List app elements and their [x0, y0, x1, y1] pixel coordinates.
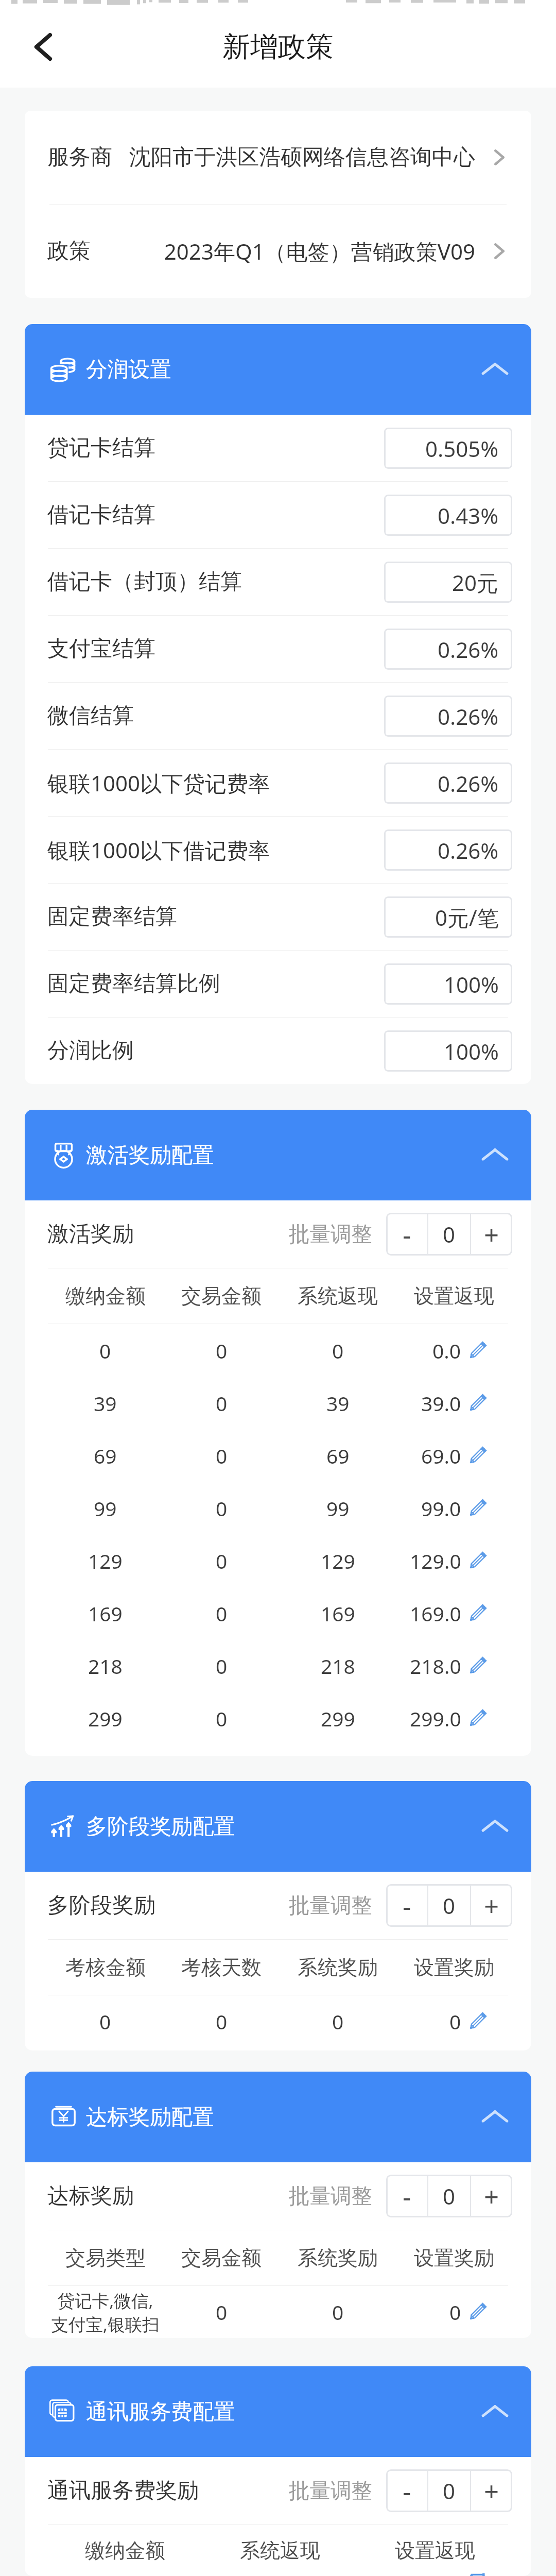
- staticText: 设置奖励: [414, 1955, 494, 1980]
- staticText: 交易金额: [181, 1283, 262, 1309]
- staticText: 交易类型: [65, 2245, 146, 2270]
- staticText: 0: [216, 1495, 228, 1522]
- staticText: 考核金额: [65, 1955, 146, 1980]
- button[interactable]: 银联1000以下贷记费率: [25, 750, 531, 816]
- staticText: 100%: [444, 1037, 499, 1066]
- staticText: -: [403, 1216, 411, 1252]
- staticText: 批量调整: [289, 1221, 372, 1247]
- staticText: 0: [216, 1442, 228, 1469]
- button[interactable]: 增加: [471, 2469, 512, 2512]
- button[interactable]: 编辑: [396, 1389, 512, 1417]
- staticText: 129: [321, 1547, 355, 1574]
- staticText: 激活奖励: [47, 1221, 134, 1248]
- button[interactable]: 编辑: [396, 1337, 512, 1364]
- staticText: 99.0: [421, 1495, 461, 1522]
- staticText: 218: [321, 1652, 355, 1680]
- staticText: 批量调整: [289, 1892, 372, 1919]
- staticText: 169: [321, 1600, 355, 1627]
- button[interactable]: 减少: [386, 2469, 427, 2512]
- staticText: 设置返现: [414, 1283, 494, 1309]
- button[interactable]: 微信结算: [25, 683, 531, 749]
- staticText: 0: [332, 2298, 344, 2326]
- staticText: 固定费率结算比例: [47, 970, 220, 997]
- button[interactable]: 编辑: [396, 1652, 512, 1680]
- staticText: 0: [216, 1547, 228, 1574]
- staticText: 系统返现: [240, 2538, 320, 2563]
- staticText: 0: [99, 1337, 111, 1364]
- staticText: 缴纳金额: [65, 1283, 146, 1309]
- staticText: +: [484, 2178, 499, 2214]
- button[interactable]: 编辑: [396, 1705, 512, 1732]
- button[interactable]: 支付宝结算: [25, 616, 531, 682]
- button[interactable]: 分润设置: [25, 324, 531, 415]
- staticText: 通讯服务费配置: [86, 2398, 235, 2425]
- button[interactable]: 编辑: [396, 1547, 512, 1574]
- button[interactable]: 编辑: [396, 1600, 512, 1627]
- button[interactable]: 编辑: [396, 2008, 512, 2035]
- staticText: 299: [321, 1705, 355, 1732]
- staticText: 0: [216, 1652, 228, 1680]
- staticText: 69: [326, 1442, 350, 1469]
- button[interactable]: 多阶段奖励配置: [25, 1781, 531, 1872]
- staticText: 99: [94, 1495, 117, 1522]
- button[interactable]: 返回: [6, 10, 80, 84]
- button[interactable]: 贷记卡结算: [25, 415, 531, 481]
- button[interactable]: 减少: [386, 1884, 427, 1927]
- button[interactable]: 固定费率结算: [25, 884, 531, 950]
- staticText: 0: [332, 1337, 344, 1364]
- staticText: 169: [88, 1600, 123, 1627]
- button[interactable]: 银联1000以下借记费率: [25, 817, 531, 883]
- staticText: 0.26%: [438, 769, 499, 798]
- button[interactable]: 编辑: [396, 2298, 512, 2326]
- staticText: 69.0: [421, 1442, 461, 1469]
- staticText: 多阶段奖励: [47, 1892, 155, 1919]
- staticText: 批量调整: [289, 2183, 372, 2209]
- staticText: 0: [216, 1705, 228, 1732]
- staticText: 激活奖励配置: [86, 1142, 214, 1168]
- staticText: 考核天数: [181, 1955, 262, 1980]
- staticText: 0.0: [432, 1337, 461, 1364]
- staticText: 设置奖励: [414, 2245, 494, 2270]
- staticText: 0元/笔: [435, 903, 499, 932]
- staticText: 0: [99, 2008, 111, 2035]
- button[interactable]: 激活奖励配置: [25, 1110, 531, 1200]
- staticText: +: [484, 2473, 499, 2509]
- staticText: 0: [443, 1219, 456, 1249]
- staticText: 99: [326, 1495, 350, 1522]
- staticText: 批量调整: [289, 2478, 372, 2504]
- staticText: -: [403, 2178, 411, 2214]
- staticText: 299: [88, 1705, 123, 1732]
- staticText: 0: [216, 2298, 228, 2326]
- staticText: 银联1000以下借记费率: [47, 835, 270, 865]
- staticText: 0: [216, 2008, 228, 2035]
- staticText: -: [403, 1888, 411, 1923]
- button[interactable]: 通讯服务费配置: [25, 2366, 531, 2457]
- button[interactable]: 服务商: [25, 111, 531, 204]
- button[interactable]: 借记卡（封顶）结算: [25, 549, 531, 615]
- button[interactable]: 增加: [471, 1213, 512, 1256]
- staticText: 39.0: [421, 1389, 461, 1417]
- button[interactable]: 增加: [471, 2175, 512, 2217]
- staticText: 218.0: [410, 1652, 461, 1680]
- button[interactable]: 减少: [386, 1213, 427, 1256]
- staticText: 交易金额: [181, 2245, 262, 2270]
- staticText: 贷记卡结算: [47, 434, 155, 462]
- button[interactable]: 政策: [25, 205, 531, 298]
- button[interactable]: 编辑: [396, 1495, 512, 1522]
- staticText: 借记卡（封顶）结算: [47, 568, 242, 596]
- button[interactable]: 分润比例: [25, 1018, 531, 1084]
- staticText: 299.0: [410, 1705, 461, 1732]
- button[interactable]: 借记卡结算: [25, 482, 531, 548]
- staticText: 多阶段奖励配置: [86, 1813, 235, 1840]
- staticText: 0: [449, 2008, 461, 2035]
- button[interactable]: 编辑: [396, 1442, 512, 1469]
- staticText: +: [484, 1216, 499, 1252]
- button[interactable]: 达标奖励配置: [25, 2072, 531, 2162]
- button[interactable]: 减少: [386, 2175, 427, 2217]
- button[interactable]: 增加: [471, 1884, 512, 1927]
- button[interactable]: 固定费率结算比例: [25, 951, 531, 1017]
- staticText: 政策: [47, 238, 91, 265]
- staticText: 0: [216, 1337, 228, 1364]
- staticText: 129.0: [410, 1547, 461, 1574]
- staticText: +: [484, 1888, 499, 1923]
